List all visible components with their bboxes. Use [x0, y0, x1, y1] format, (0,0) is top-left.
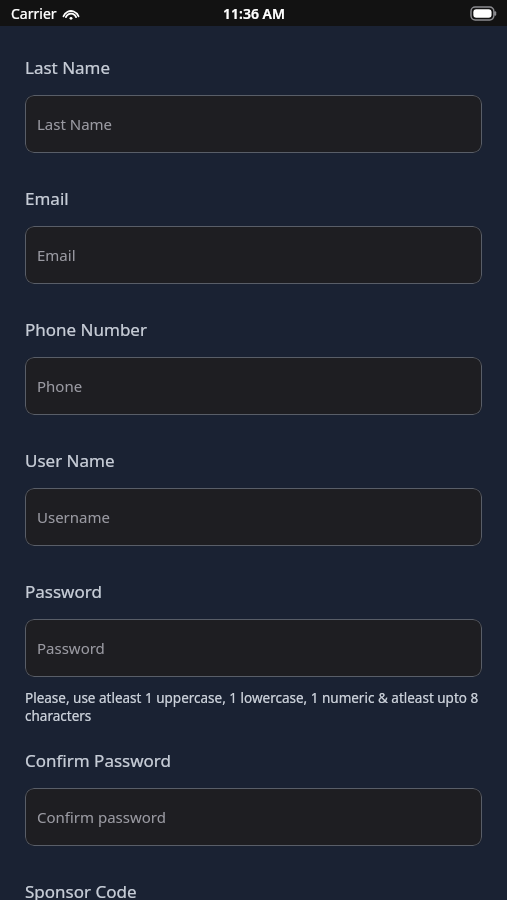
- staticText: Email: [37, 245, 76, 265]
- staticText: Please, use atleast 1 uppercase, 1 lower…: [25, 689, 482, 725]
- staticText: Password: [37, 638, 105, 658]
- staticText: Sponsor Code: [25, 880, 137, 900]
- staticText: Last Name: [37, 114, 113, 134]
- staticText: Last Name: [25, 56, 111, 79]
- button[interactable]: Password: [25, 619, 482, 677]
- staticText: Email: [25, 187, 69, 210]
- button[interactable]: Confirm password: [25, 788, 482, 846]
- button[interactable]: Email: [25, 226, 482, 284]
- button[interactable]: Last Name: [25, 95, 482, 153]
- staticText: Password: [25, 580, 102, 603]
- staticText: User Name: [25, 449, 115, 472]
- staticText: Phone: [37, 376, 83, 396]
- button[interactable]: Phone: [25, 357, 482, 415]
- staticText: Confirm Password: [25, 749, 171, 772]
- staticText: Carrier: [11, 4, 57, 23]
- staticText: Username: [37, 507, 110, 527]
- staticText: 11:36 AM: [223, 4, 285, 23]
- staticText: Phone Number: [25, 318, 147, 341]
- button[interactable]: Username: [25, 488, 482, 546]
- staticText: Confirm password: [37, 807, 166, 827]
